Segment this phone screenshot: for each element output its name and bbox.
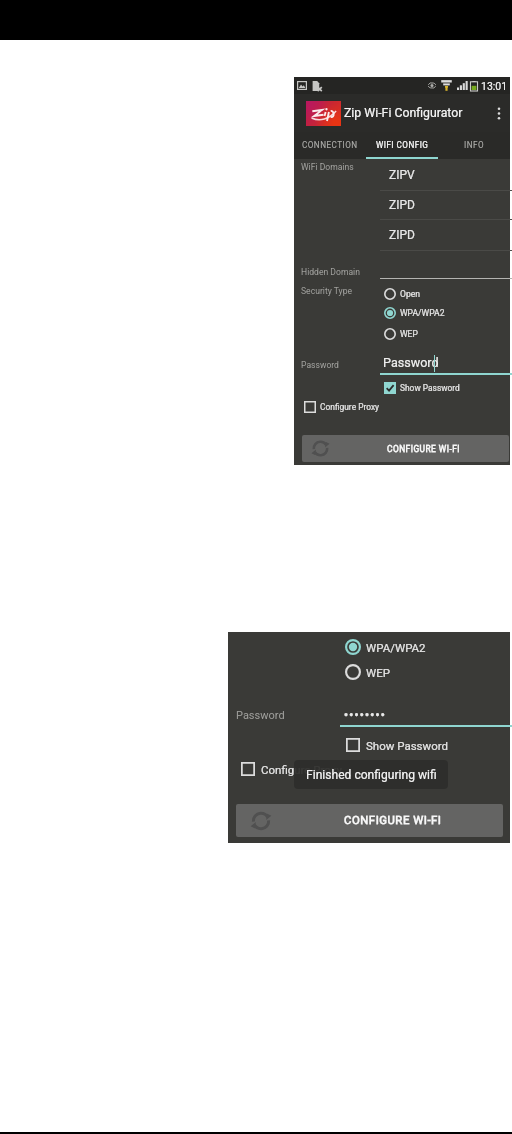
staticText: WiFi Domains (301, 162, 354, 172)
staticText: ZIPD (389, 198, 415, 212)
button[interactable]: WPA/WPA2 (384, 307, 445, 319)
button[interactable]: More options (490, 104, 508, 122)
button[interactable]: Open (384, 288, 421, 300)
staticText: Hidden Domain (301, 267, 360, 277)
button[interactable]: ZIPD (380, 220, 512, 251)
button[interactable]: ZIPD (380, 191, 512, 220)
staticText: ZIPD (389, 228, 415, 242)
staticText: Finished configuring wifi (306, 768, 437, 782)
staticText: WPA/WPA2 (400, 308, 445, 318)
staticText: WPA/WPA2 (366, 641, 426, 654)
staticText: Password (236, 709, 285, 722)
staticText: Show Password (366, 739, 449, 752)
staticText: WEP (400, 329, 418, 339)
button[interactable]: Show Password (346, 738, 449, 752)
button[interactable]: WPA/WPA2 (345, 639, 426, 655)
staticText: WEP (366, 666, 390, 679)
staticText: 13:01 (481, 80, 508, 92)
staticText: Configure Proxy (261, 763, 342, 776)
staticText: Open (400, 289, 421, 299)
staticText: Password (301, 360, 339, 370)
staticText: CONNECTION (302, 140, 358, 150)
button[interactable]: CONFIGURE WI-FI (236, 804, 503, 837)
button[interactable]: INFO (438, 132, 510, 159)
staticText: Configure Proxy (320, 402, 380, 412)
button[interactable]: WIFI CONFIG (366, 132, 438, 159)
staticText: •••••••• (344, 708, 386, 722)
staticText: ZIPV (389, 168, 415, 182)
button[interactable]: WEP (384, 328, 418, 340)
button[interactable]: Configure Proxy (241, 762, 342, 776)
button[interactable]: CONNECTION (294, 132, 366, 159)
staticText: CONFIGURE WI-FI (344, 814, 442, 827)
staticText: Zip Wi-Fi Configurator (344, 106, 463, 120)
staticText: INFO (464, 140, 485, 150)
staticText: Show Password (400, 383, 460, 393)
staticText: Security Type (301, 286, 353, 296)
button[interactable]: ZIPV (380, 159, 512, 191)
button[interactable]: Configure Proxy (304, 401, 380, 413)
button[interactable]: WEP (345, 664, 390, 680)
button[interactable]: CONFIGURE WI-FI (302, 435, 509, 462)
staticText: Password (383, 355, 439, 370)
staticText: WIFI CONFIG (376, 140, 429, 150)
button[interactable]: Show Password (384, 382, 460, 394)
staticText: CONFIGURE WI-FI (387, 444, 461, 454)
